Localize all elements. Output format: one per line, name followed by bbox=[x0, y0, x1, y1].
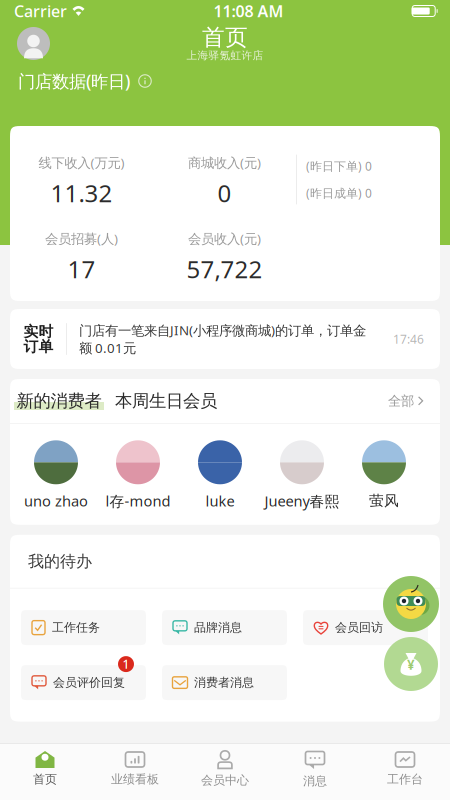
staticText: 首页 bbox=[202, 24, 248, 51]
staticText: 会员招募(人) bbox=[45, 230, 118, 247]
staticText: 萤风 bbox=[369, 492, 399, 510]
button[interactable]: Jueeny春熙 bbox=[261, 440, 343, 508]
staticText: 工作台 bbox=[387, 772, 423, 787]
button[interactable]: 首页 bbox=[0, 744, 90, 800]
staticText: 1 bbox=[122, 656, 129, 672]
staticText: Jueeny春熙 bbox=[264, 491, 339, 511]
button[interactable]: uno zhao bbox=[15, 440, 97, 508]
staticText: ¥ bbox=[407, 656, 415, 673]
staticText: 工作任务 bbox=[52, 620, 100, 635]
staticText: 品牌消息 bbox=[194, 620, 242, 635]
button[interactable]: Revenue bbox=[384, 637, 438, 691]
staticText: 业绩看板 bbox=[111, 772, 159, 787]
staticText: 订单 bbox=[23, 337, 53, 355]
button[interactable]: Assistant bbox=[383, 576, 439, 632]
button[interactable]: luke bbox=[179, 440, 261, 508]
staticText: 0 bbox=[217, 177, 231, 209]
staticText: 17:46 bbox=[393, 331, 424, 347]
staticText: 消息 bbox=[303, 773, 327, 788]
button[interactable]: 会员评价回复 bbox=[21, 656, 146, 700]
button[interactable]: l存-mond bbox=[97, 440, 179, 508]
staticText: 门店数据(昨日) bbox=[18, 69, 130, 92]
staticText: 本周生日会员 bbox=[115, 390, 217, 412]
button[interactable]: Info bbox=[136, 72, 154, 90]
button[interactable]: 消费者消息 bbox=[162, 656, 287, 700]
staticText: 会员评价回复 bbox=[53, 675, 125, 690]
button[interactable]: 工作任务 bbox=[21, 601, 146, 645]
staticText: 全部 bbox=[388, 393, 414, 409]
button[interactable]: 会员回访 bbox=[303, 601, 428, 645]
staticText: l存-mond bbox=[105, 491, 170, 511]
button[interactable]: Profile bbox=[0, 21, 70, 65]
button[interactable]: 全部 bbox=[388, 389, 424, 413]
staticText: (昨日成单) 0 bbox=[306, 185, 372, 201]
button[interactable]: 实时 bbox=[10, 309, 440, 369]
staticText: 我的待办 bbox=[28, 551, 92, 571]
staticText: 实时 bbox=[23, 322, 53, 340]
staticText: 上海驿氪虹许店 bbox=[186, 49, 263, 62]
button[interactable]: 萤风 bbox=[343, 440, 425, 508]
button[interactable]: 业绩看板 bbox=[90, 744, 180, 800]
staticText: 门店有一笔来自JIN(小程序微商城)的订单，订单金额 0.01元 bbox=[79, 321, 366, 357]
button[interactable]: 品牌消息 bbox=[162, 601, 287, 645]
staticText: 会员回访 bbox=[335, 620, 383, 635]
button[interactable]: 工作台 bbox=[360, 744, 450, 800]
button[interactable]: 本周生日会员 bbox=[115, 389, 217, 413]
staticText: 消费者消息 bbox=[194, 675, 254, 690]
button[interactable]: 会员中心 bbox=[180, 744, 270, 800]
staticText: luke bbox=[205, 491, 234, 511]
staticText: uno zhao bbox=[24, 491, 88, 511]
staticText: Carrier bbox=[14, 0, 67, 22]
button[interactable]: 新的消费者 bbox=[14, 389, 104, 413]
staticText: 会员中心 bbox=[201, 773, 249, 788]
staticText: 17 bbox=[67, 253, 95, 285]
staticText: 首页 bbox=[33, 772, 57, 787]
staticText: 会员收入(元) bbox=[188, 230, 261, 247]
staticText: 新的消费者 bbox=[16, 390, 101, 412]
button[interactable]: 消息 bbox=[270, 744, 360, 800]
staticText: (昨日下单) 0 bbox=[306, 158, 372, 174]
staticText: 11:08 AM bbox=[214, 0, 284, 22]
staticText: 57,722 bbox=[186, 253, 262, 285]
staticText: 商城收入(元) bbox=[188, 154, 261, 171]
staticText: 11.32 bbox=[50, 177, 112, 209]
staticText: 线下收入(万元) bbox=[38, 154, 124, 171]
